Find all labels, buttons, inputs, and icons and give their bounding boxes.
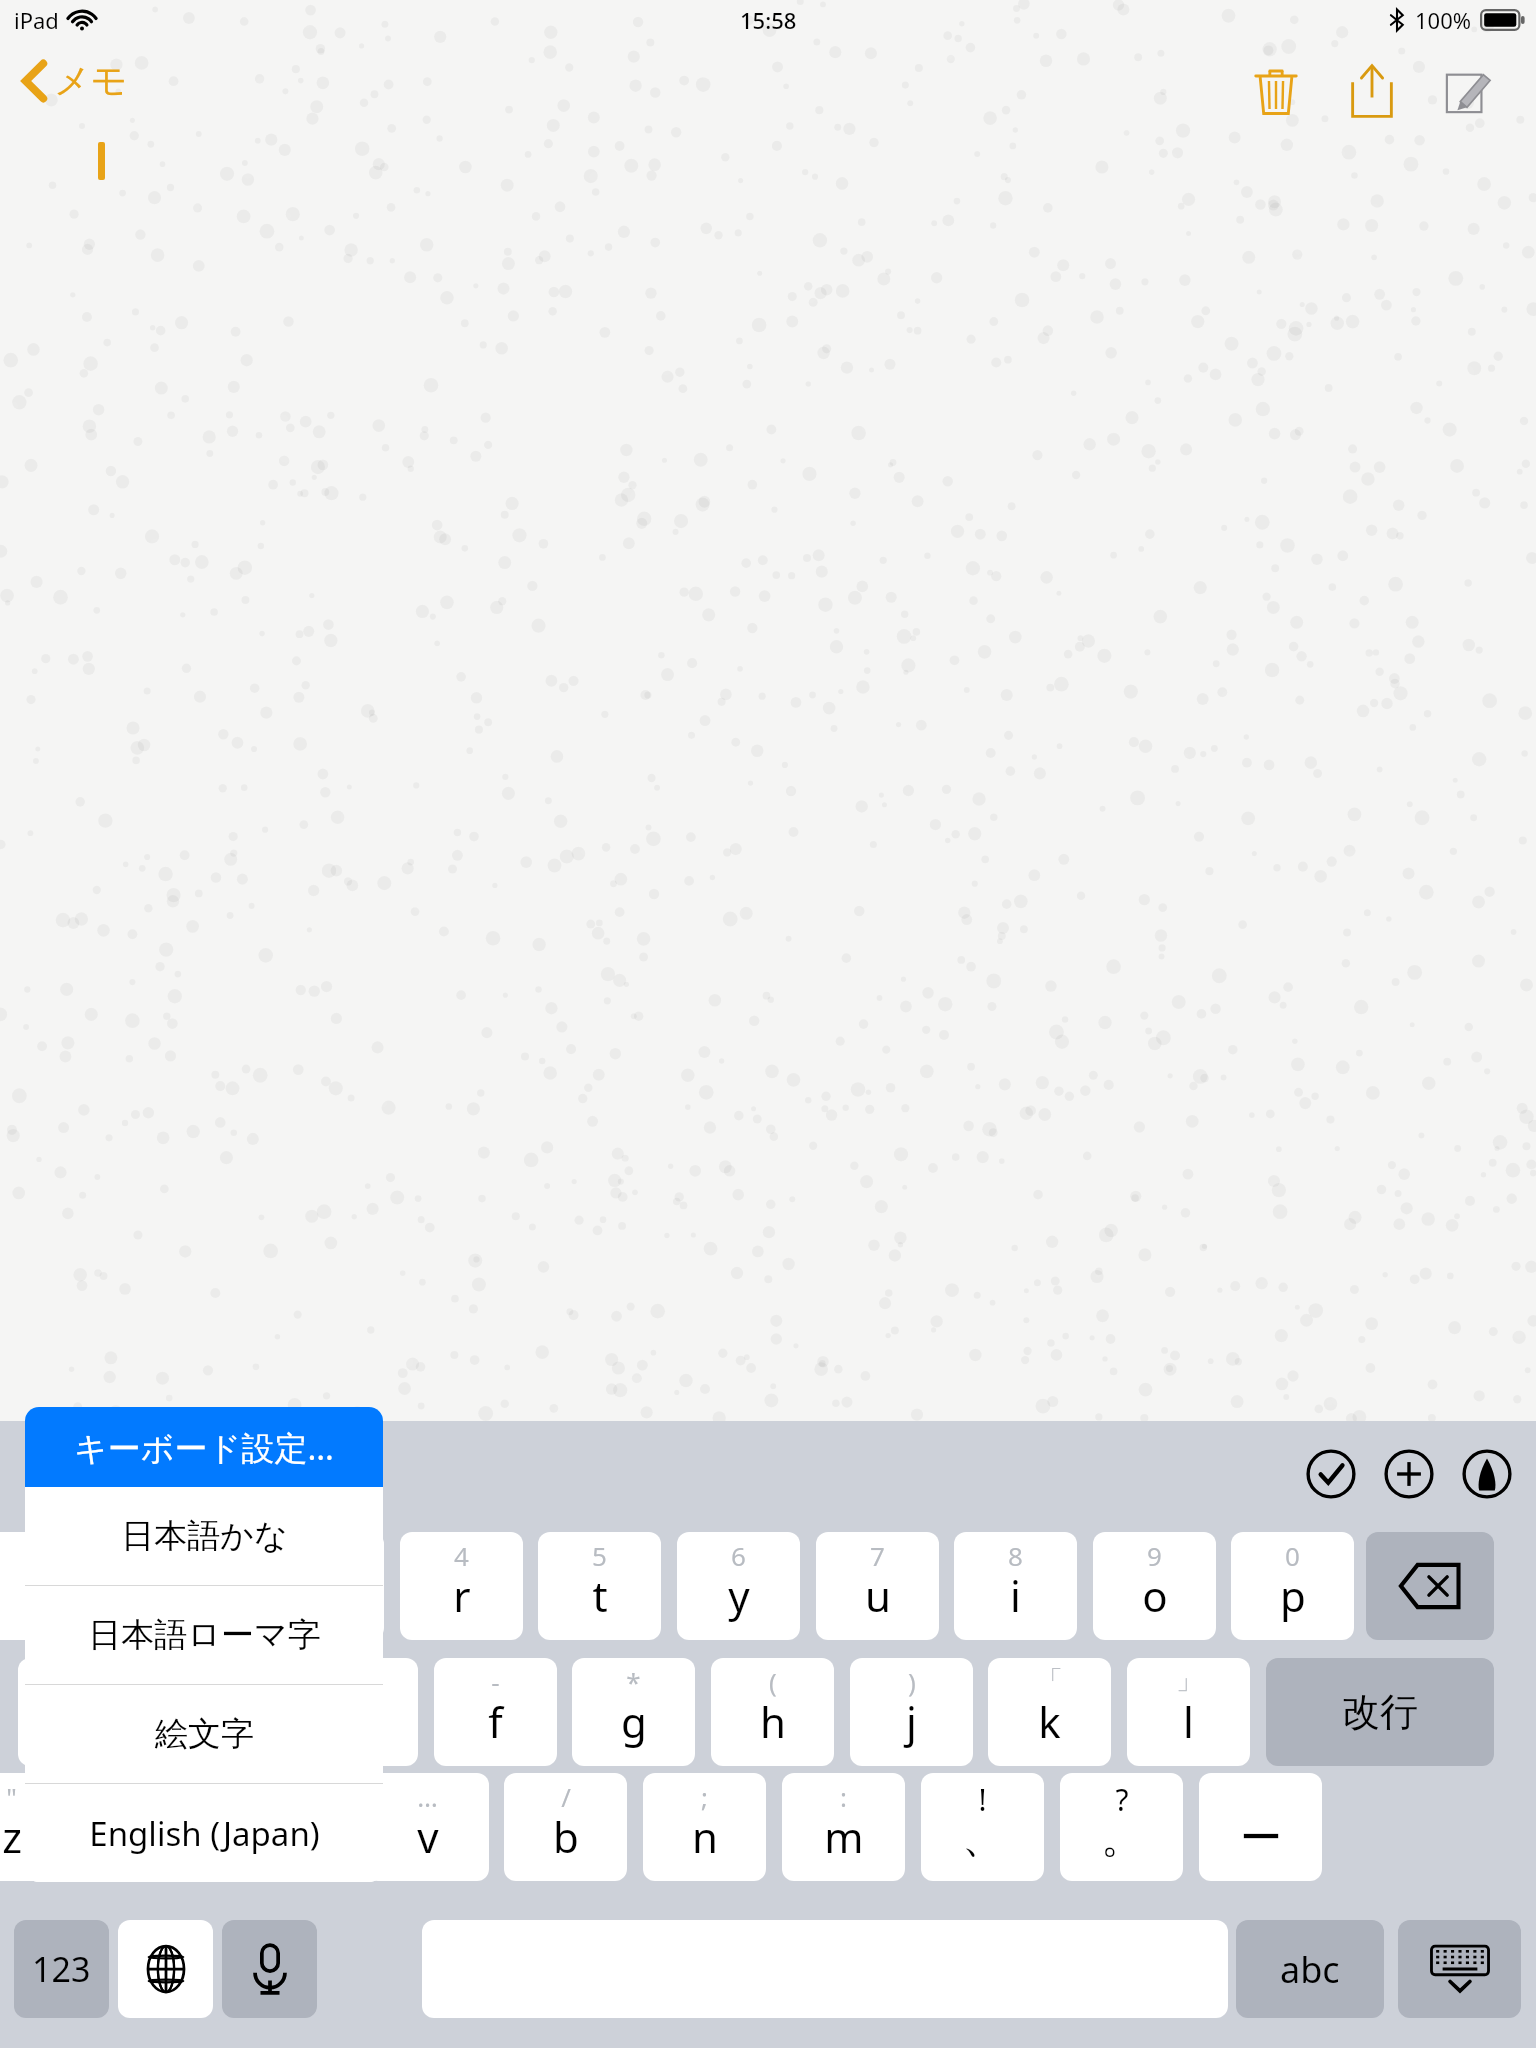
staticText: English (Japan)	[89, 1811, 320, 1856]
button[interactable]: 絵文字	[25, 1685, 383, 1783]
button[interactable]: メモ	[14, 52, 136, 109]
staticText: q	[33, 1567, 59, 1624]
staticText: 6	[731, 1538, 746, 1573]
staticText: 日本語ローマ字	[88, 1614, 321, 1656]
button[interactable]: 6	[677, 1532, 800, 1640]
button[interactable]: 」	[1127, 1658, 1250, 1766]
staticText: 5	[592, 1538, 607, 1573]
staticText: 。	[1101, 1812, 1143, 1865]
staticText: k	[1038, 1693, 1061, 1750]
staticText: g	[621, 1693, 647, 1750]
button[interactable]: Add	[1370, 1435, 1448, 1513]
staticText: 123	[32, 1946, 91, 1992]
button[interactable]: /	[504, 1773, 627, 1881]
staticText: b	[553, 1808, 579, 1865]
button[interactable]: 日本語かな	[25, 1487, 383, 1585]
button[interactable]: :	[782, 1773, 905, 1881]
staticText: メモ	[54, 58, 128, 103]
staticText: @	[68, 1664, 92, 1699]
staticText: キーボード設定...	[74, 1425, 334, 1470]
button[interactable]: 9	[1093, 1532, 1216, 1640]
button[interactable]: 7	[816, 1532, 939, 1640]
staticText: '	[148, 1779, 154, 1814]
staticText: p	[1280, 1567, 1306, 1624]
button[interactable]: (	[711, 1658, 834, 1766]
button[interactable]: @	[18, 1658, 141, 1766]
staticText: r	[453, 1567, 471, 1624]
button[interactable]: ;	[643, 1773, 766, 1881]
staticText: /	[561, 1779, 571, 1814]
staticText: ?	[1115, 1779, 1129, 1820]
button[interactable]: 5	[538, 1532, 661, 1640]
staticText: 9	[1147, 1538, 1162, 1573]
button[interactable]: 8	[954, 1532, 1077, 1640]
staticText: 0	[1285, 1538, 1300, 1573]
staticText: v	[417, 1808, 439, 1865]
button[interactable]: 3	[261, 1532, 384, 1640]
button[interactable]: 4	[400, 1532, 523, 1640]
button[interactable]: 改行	[1266, 1658, 1494, 1766]
staticText: c	[278, 1808, 299, 1865]
staticText: z	[2, 1808, 22, 1865]
staticText: 2	[177, 1538, 192, 1573]
staticText: ¥	[349, 1664, 364, 1699]
button[interactable]	[1366, 1532, 1494, 1640]
button[interactable]: New note	[1420, 48, 1516, 134]
staticText: n	[692, 1808, 718, 1865]
staticText: y	[728, 1567, 750, 1624]
staticText: 、	[962, 1812, 1004, 1865]
button[interactable]: !	[921, 1773, 1044, 1881]
button[interactable]: 「	[988, 1658, 1111, 1766]
staticText: !	[978, 1779, 987, 1820]
staticText: e	[311, 1567, 335, 1624]
button[interactable]: …	[366, 1773, 489, 1881]
button[interactable]: キーボード設定...	[25, 1407, 383, 1487]
staticText: 15:58	[740, 5, 797, 35]
button[interactable]: 日本語ローマ字	[25, 1586, 383, 1684]
staticText: i	[1010, 1567, 1021, 1624]
button[interactable]: Switch keyboard	[118, 1920, 213, 2018]
button[interactable]: Hide keyboard	[1398, 1920, 1521, 2018]
staticText: #	[210, 1664, 227, 1699]
staticText: x	[139, 1808, 162, 1865]
button[interactable]: Share	[1324, 48, 1420, 134]
button[interactable]: Dictation	[222, 1920, 317, 2018]
button[interactable]: ー	[1199, 1773, 1322, 1881]
staticText: -	[491, 1664, 500, 1699]
button[interactable]: ¥	[295, 1658, 418, 1766]
button[interactable]: "	[0, 1773, 73, 1881]
button[interactable]: 1	[0, 1532, 107, 1640]
button[interactable]: 0	[1231, 1532, 1354, 1640]
button[interactable]: )	[850, 1658, 973, 1766]
staticText: t	[592, 1567, 608, 1624]
button[interactable]: ~	[227, 1773, 350, 1881]
staticText: l	[1183, 1693, 1194, 1750]
button[interactable]: ?	[1060, 1773, 1183, 1881]
staticText: …	[417, 1779, 438, 1814]
staticText: 日本語かな	[121, 1515, 288, 1557]
button[interactable]: Markup	[1448, 1435, 1526, 1513]
staticText: w	[168, 1567, 202, 1624]
staticText: "	[6, 1779, 17, 1814]
staticText: *	[626, 1664, 641, 1699]
button[interactable]: 2	[123, 1532, 246, 1640]
button[interactable]: English (Japan)	[25, 1784, 383, 1882]
button[interactable]: #	[157, 1658, 280, 1766]
button[interactable]: -	[434, 1658, 557, 1766]
staticText: o	[1142, 1567, 1168, 1624]
button[interactable]: '	[89, 1773, 212, 1881]
button[interactable]: abc	[1236, 1920, 1384, 2018]
staticText: s	[208, 1693, 229, 1750]
staticText: :	[840, 1779, 847, 1814]
staticText: )	[908, 1664, 916, 1699]
staticText: iPad	[14, 5, 59, 35]
button[interactable]: Checklist	[1292, 1435, 1370, 1513]
staticText: ;	[701, 1779, 708, 1814]
button[interactable]: *	[572, 1658, 695, 1766]
button[interactable]: 123	[14, 1920, 109, 2018]
button[interactable]: Delete	[1228, 48, 1324, 134]
